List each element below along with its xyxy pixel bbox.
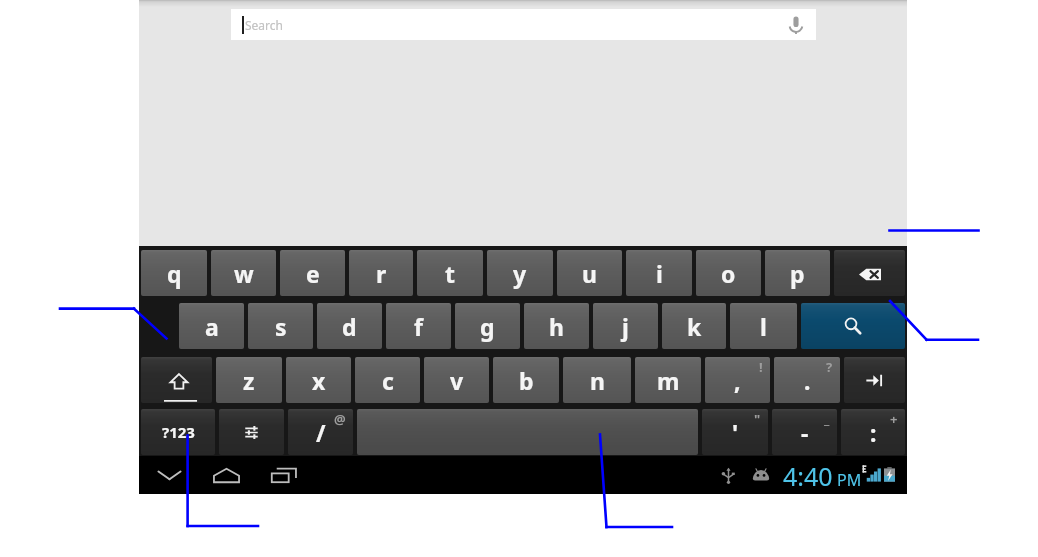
button[interactable]: / xyxy=(288,409,353,455)
staticText: PM xyxy=(837,469,862,491)
staticText: y xyxy=(513,258,527,289)
button[interactable]: . xyxy=(774,357,840,403)
staticText: k xyxy=(687,311,702,342)
button[interactable]: f xyxy=(386,303,451,349)
button[interactable]: m xyxy=(635,357,701,403)
button[interactable]: ?123 xyxy=(141,409,215,455)
staticText: m xyxy=(657,365,680,396)
button[interactable]: g xyxy=(455,303,520,349)
button[interactable]: Voice search xyxy=(786,15,806,35)
button[interactable]: e xyxy=(280,250,345,296)
button[interactable]: : xyxy=(841,409,905,455)
button[interactable]: , xyxy=(705,357,770,403)
button[interactable]: p xyxy=(765,250,830,296)
button[interactable]: Settings xyxy=(219,409,284,455)
staticText: e xyxy=(306,258,320,289)
staticText: t xyxy=(445,258,455,289)
staticText: c xyxy=(382,365,394,396)
button[interactable]: Recents xyxy=(255,456,312,494)
button[interactable]: ' xyxy=(702,409,768,455)
staticText: d xyxy=(342,311,357,342)
button[interactable]: w xyxy=(211,250,276,296)
staticText: a xyxy=(205,311,219,342)
staticText: n xyxy=(590,365,605,396)
staticText: ' xyxy=(732,417,739,448)
staticText: . xyxy=(804,365,811,396)
staticText: " xyxy=(754,410,761,428)
staticText: h xyxy=(549,311,564,342)
staticText: r xyxy=(376,258,387,289)
button[interactable]: d xyxy=(317,303,382,349)
button[interactable]: b xyxy=(493,357,559,403)
staticText: u xyxy=(582,258,597,289)
staticText: ?123 xyxy=(162,422,195,442)
button[interactable]: j xyxy=(593,303,658,349)
button[interactable]: Search xyxy=(231,9,816,40)
staticText: v xyxy=(450,365,464,396)
staticText: z xyxy=(243,365,255,396)
button[interactable]: x xyxy=(286,357,351,403)
staticText: w xyxy=(234,258,254,289)
button[interactable]: Search xyxy=(801,303,905,349)
button[interactable]: y xyxy=(487,250,553,296)
button[interactable]: z xyxy=(216,357,282,403)
staticText: j xyxy=(622,311,629,342)
button[interactable]: l xyxy=(730,303,797,349)
staticText: @ xyxy=(334,410,346,428)
button[interactable]: v xyxy=(424,357,489,403)
staticText: : xyxy=(870,417,877,448)
staticText: , xyxy=(734,365,741,396)
staticText: i xyxy=(656,258,663,289)
staticText: p xyxy=(790,258,805,289)
staticText: s xyxy=(275,311,287,342)
staticText: f xyxy=(414,311,423,342)
button[interactable]: k xyxy=(662,303,726,349)
staticText: + xyxy=(890,410,898,428)
button[interactable]: Home xyxy=(198,456,255,494)
button[interactable]: c xyxy=(355,357,420,403)
button[interactable]: Shift xyxy=(141,357,212,403)
staticText: q xyxy=(167,258,182,289)
staticText: Search xyxy=(245,17,283,33)
staticText: o xyxy=(721,258,736,289)
staticText: l xyxy=(760,311,767,342)
button[interactable]: Back xyxy=(141,456,198,494)
button[interactable]: a xyxy=(179,303,244,349)
button[interactable]: o xyxy=(696,250,761,296)
staticText: x xyxy=(312,365,326,396)
staticText: b xyxy=(519,365,534,396)
staticText: _ xyxy=(824,410,830,428)
button[interactable]: n xyxy=(563,357,631,403)
button[interactable]: s xyxy=(248,303,313,349)
staticText: g xyxy=(480,311,495,342)
button[interactable]: u xyxy=(557,250,622,296)
staticText: 4:40 xyxy=(783,459,833,493)
staticText: / xyxy=(316,417,326,448)
button[interactable]: Backspace xyxy=(834,250,905,296)
button[interactable]: Space xyxy=(357,409,698,455)
button[interactable]: t xyxy=(417,250,483,296)
button[interactable]: h xyxy=(524,303,589,349)
button[interactable]: i xyxy=(626,250,692,296)
staticText: ? xyxy=(826,358,833,376)
button[interactable]: - xyxy=(772,409,837,455)
button[interactable]: q xyxy=(141,250,207,296)
button[interactable]: r xyxy=(349,250,413,296)
button[interactable]: Tab xyxy=(844,357,905,403)
staticText: ! xyxy=(759,358,763,376)
staticText: - xyxy=(801,417,809,448)
